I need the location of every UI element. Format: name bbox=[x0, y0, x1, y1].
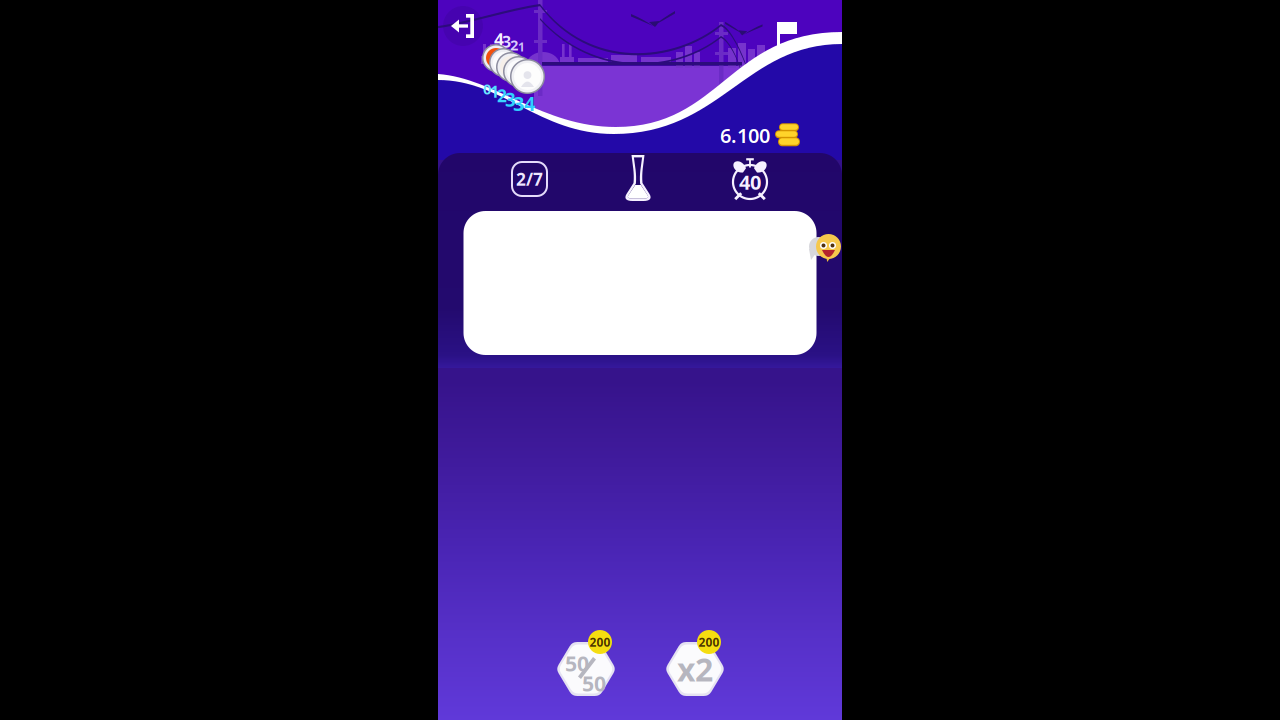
staticText: 2 bbox=[510, 35, 518, 54]
button[interactable]: 2/7 bbox=[512, 162, 547, 196]
button[interactable]: 50 bbox=[556, 630, 618, 698]
staticText: 40 bbox=[739, 169, 761, 195]
staticText: 3 bbox=[502, 31, 511, 52]
staticText: x2 bbox=[677, 648, 713, 690]
staticText: 200 bbox=[589, 634, 610, 650]
button[interactable]: x2 bbox=[665, 630, 727, 698]
staticText: 2 bbox=[497, 84, 507, 107]
staticText: 1 bbox=[490, 81, 499, 102]
staticText: 6.100 bbox=[720, 122, 770, 149]
staticText: 0 bbox=[483, 79, 491, 98]
staticText: 50 bbox=[582, 669, 606, 697]
button[interactable]: 40 bbox=[724, 155, 776, 203]
staticText: 3 bbox=[505, 87, 516, 112]
staticText: 50 bbox=[565, 649, 589, 677]
staticText: 4 bbox=[494, 28, 504, 51]
staticText: 1 bbox=[518, 39, 525, 55]
staticText: 200 bbox=[698, 634, 719, 650]
staticText: 34 bbox=[513, 90, 535, 117]
button[interactable]: Hint bbox=[621, 153, 655, 203]
staticText: 2/7 bbox=[516, 167, 543, 190]
button[interactable]: Back bbox=[440, 3, 486, 49]
